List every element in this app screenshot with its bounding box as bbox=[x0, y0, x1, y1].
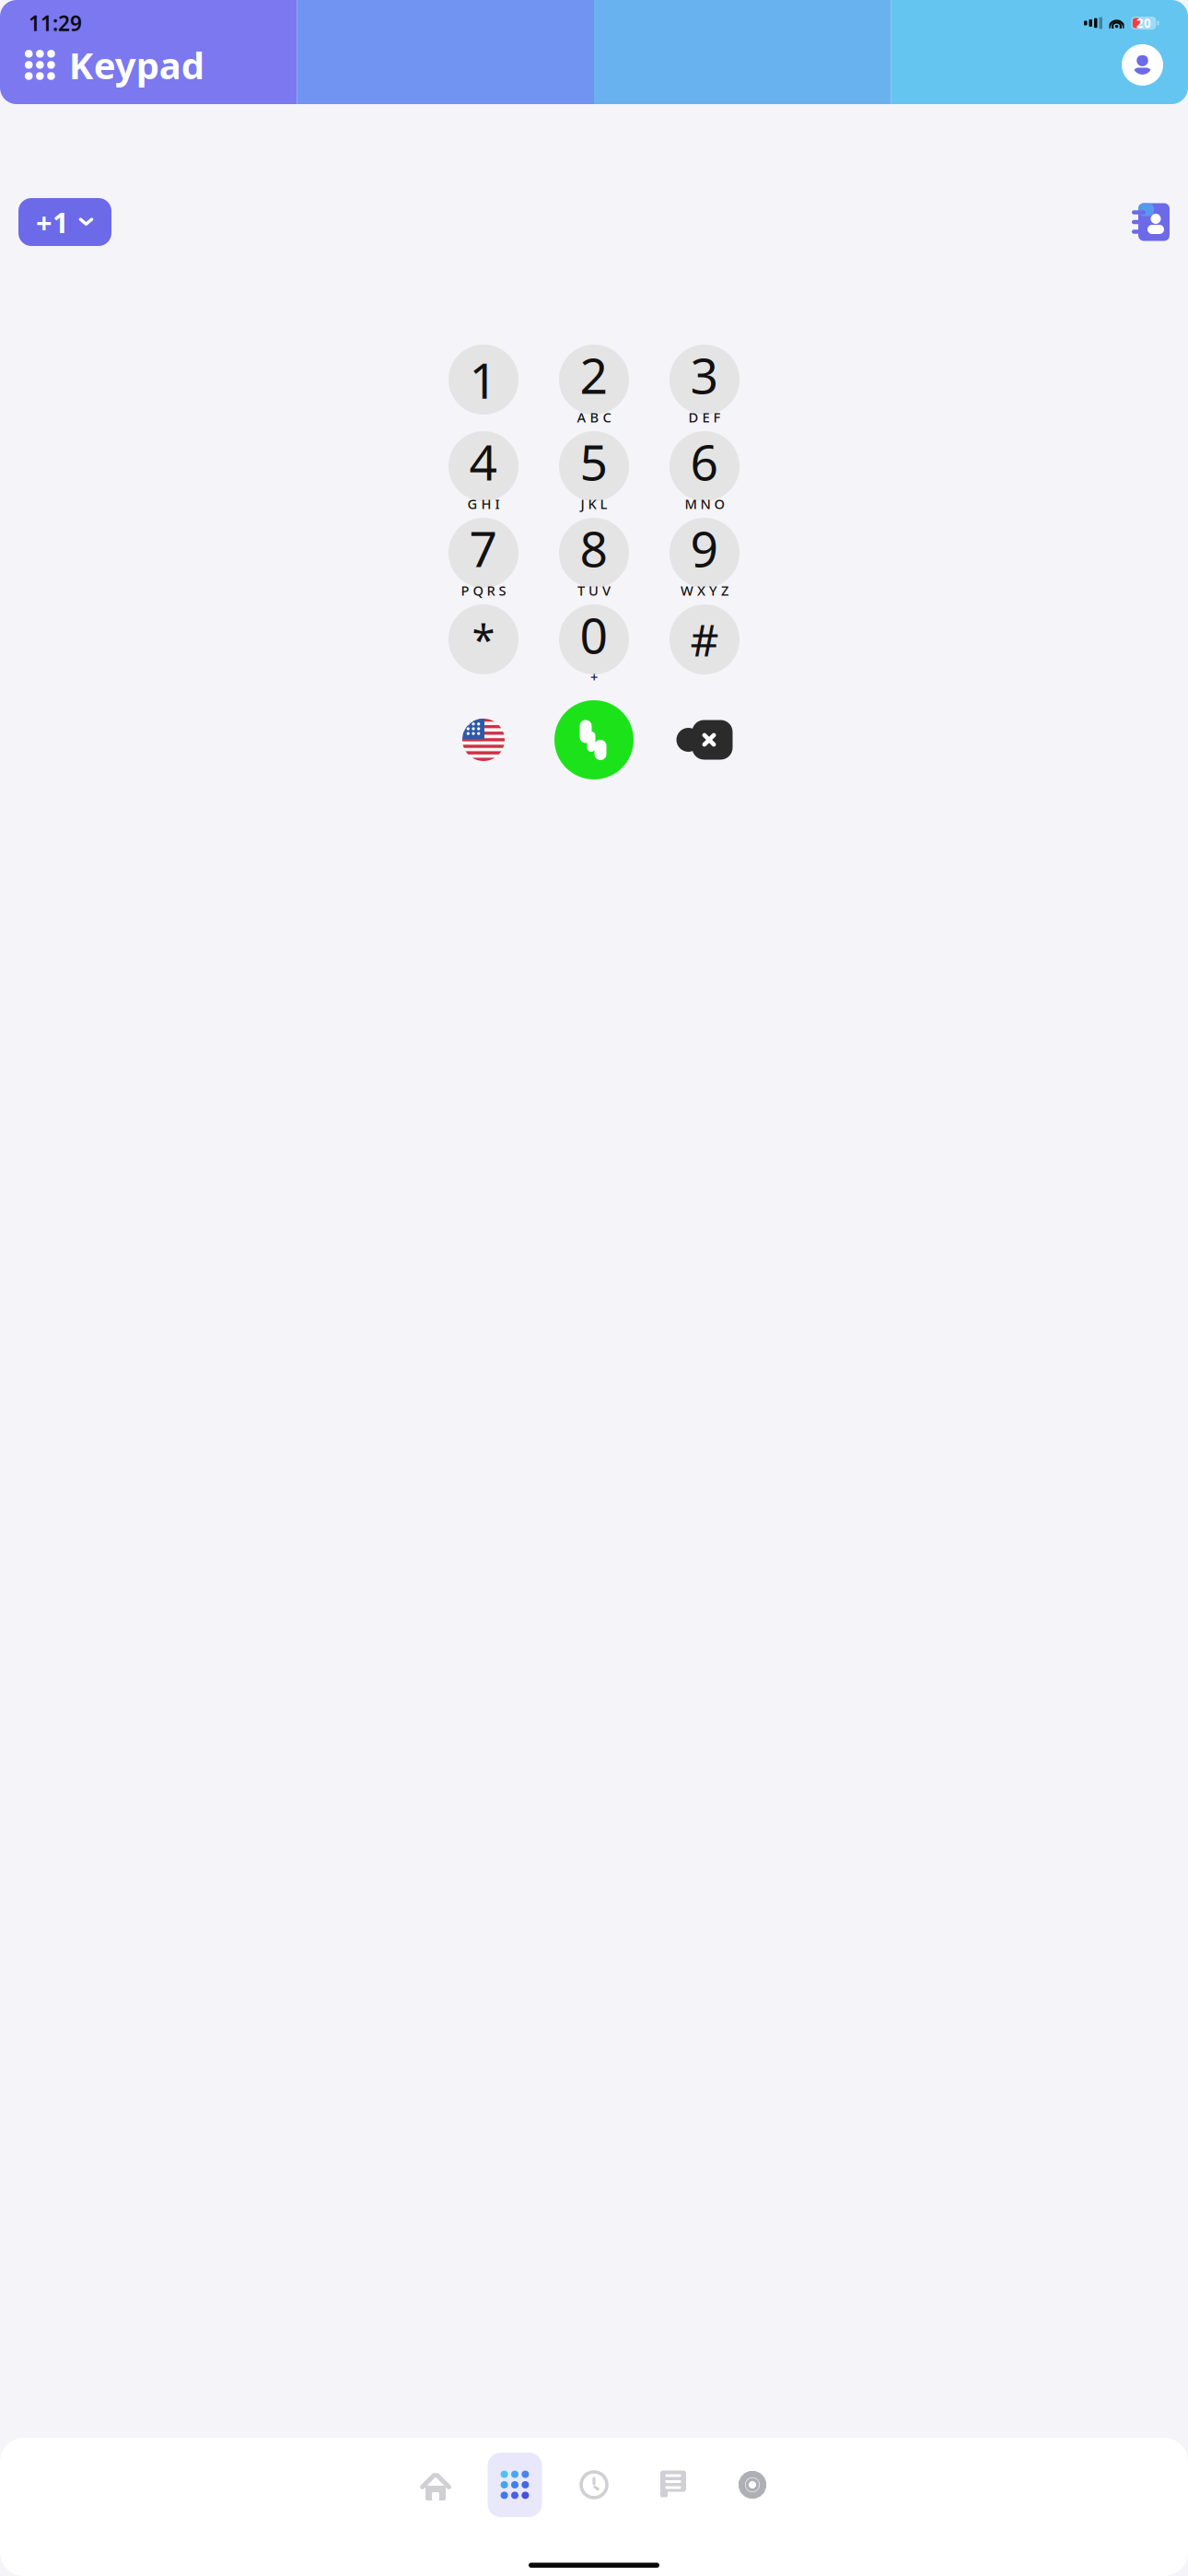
button[interactable]: Country flag, United States bbox=[462, 719, 505, 761]
button[interactable]: Delete bbox=[675, 720, 734, 760]
button[interactable]: 0 + bbox=[559, 604, 629, 674]
staticText: 9 bbox=[690, 515, 719, 581]
staticText: * bbox=[472, 612, 495, 667]
staticText: 2 bbox=[580, 342, 608, 407]
staticText: D E F bbox=[688, 408, 721, 426]
button[interactable]: 2 A B C bbox=[559, 345, 629, 415]
button[interactable]: Home bbox=[396, 2451, 475, 2519]
button[interactable]: Settings bbox=[713, 2451, 792, 2519]
button[interactable]: 3 D E F bbox=[670, 345, 740, 415]
staticText: 11:29 bbox=[29, 9, 82, 37]
staticText: +1 bbox=[36, 203, 69, 241]
button[interactable]: Messages bbox=[634, 2451, 713, 2519]
button[interactable]: 9 W X Y Z bbox=[670, 518, 740, 588]
button[interactable]: Call bbox=[554, 700, 634, 779]
staticText: A B C bbox=[577, 408, 611, 426]
staticText: + bbox=[590, 668, 598, 686]
staticText: 3 bbox=[690, 342, 719, 407]
staticText: T U V bbox=[577, 582, 611, 600]
button[interactable]: Keypad bbox=[475, 2451, 554, 2519]
button[interactable]: 5 J K L bbox=[559, 431, 629, 501]
staticText: 6 bbox=[690, 429, 719, 494]
button[interactable]: Account bbox=[1122, 44, 1163, 86]
button[interactable]: * bbox=[448, 604, 518, 674]
button[interactable]: Recents bbox=[554, 2451, 634, 2519]
staticText: # bbox=[690, 610, 719, 669]
button[interactable]: 7 P Q R S bbox=[448, 518, 518, 588]
staticText: 4 bbox=[469, 429, 498, 494]
button[interactable]: 6 M N O bbox=[670, 431, 740, 501]
button[interactable]: # bbox=[670, 604, 740, 674]
staticText: 20 bbox=[1136, 15, 1151, 31]
staticText: W X Y Z bbox=[681, 582, 728, 600]
button[interactable]: Country code +1 bbox=[18, 198, 111, 246]
button[interactable]: 8 T U V bbox=[559, 518, 629, 588]
button[interactable]: 1 bbox=[448, 345, 518, 415]
staticText: M N O bbox=[685, 495, 724, 513]
staticText: J K L bbox=[581, 495, 607, 513]
staticText: G H I bbox=[467, 495, 500, 513]
staticText: P Q R S bbox=[461, 582, 506, 600]
staticText: 8 bbox=[580, 515, 608, 581]
staticText: 1 bbox=[469, 347, 498, 412]
staticText: Keypad bbox=[69, 40, 204, 89]
button[interactable]: Keypad bbox=[25, 40, 204, 89]
staticText: 5 bbox=[580, 429, 608, 494]
button[interactable]: 4 G H I bbox=[448, 431, 518, 501]
button[interactable]: Contacts bbox=[1132, 203, 1170, 241]
staticText: 0 bbox=[580, 602, 608, 667]
staticText: 7 bbox=[469, 515, 498, 581]
